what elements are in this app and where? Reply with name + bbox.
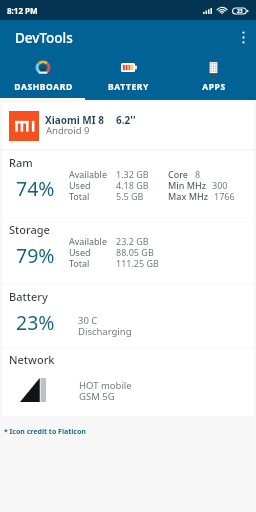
staticText: Max MHz <box>168 190 208 202</box>
staticText: 1766 <box>214 190 235 202</box>
staticText: Used <box>69 246 91 258</box>
button[interactable]: More options <box>230 24 256 50</box>
button[interactable]: DASHBOARD <box>0 54 86 100</box>
staticText: 88.05 GB <box>116 246 154 258</box>
staticText: HOT mobile <box>79 379 132 392</box>
staticText: 23% <box>16 309 55 336</box>
staticText: Used <box>69 179 91 191</box>
staticText: Android 9 <box>46 124 90 137</box>
button[interactable]: Battery <box>2 285 254 347</box>
staticText: 8 <box>195 168 201 180</box>
staticText: Discharging <box>78 325 132 338</box>
staticText: 74% <box>16 175 55 202</box>
staticText: Available <box>69 235 107 247</box>
staticText: Xiaomi MI 8 <box>45 113 104 127</box>
staticText: Min MHz <box>168 179 206 191</box>
staticText: Battery <box>9 289 48 304</box>
staticText: * Icon credit to Flaticon <box>4 427 86 437</box>
button[interactable]: Storage <box>2 218 254 284</box>
button[interactable]: Ram <box>2 151 254 217</box>
staticText: Storage <box>9 222 50 237</box>
button[interactable]: BATTERY <box>86 54 171 100</box>
staticText: Total <box>69 257 90 269</box>
staticText: 23.2 GB <box>116 235 149 247</box>
staticText: BATTERY <box>108 81 149 93</box>
staticText: DASHBOARD <box>14 81 73 93</box>
staticText: 1.32 GB <box>116 168 149 180</box>
other: Signal strength <box>20 378 46 402</box>
staticText: 4.18 GB <box>116 179 149 191</box>
staticText: 111.25 GB <box>116 257 159 269</box>
staticText: 79% <box>16 242 55 269</box>
staticText: Total <box>69 190 90 202</box>
button[interactable]: Xiaomi MI 8 <box>2 102 254 149</box>
staticText: 23 <box>237 8 243 15</box>
staticText: Network <box>9 352 55 367</box>
button[interactable]: Network <box>2 348 254 416</box>
staticText: Core <box>168 168 189 180</box>
staticText: 6.2'' <box>116 113 136 127</box>
staticText: DevTools <box>15 29 73 47</box>
staticText: GSM 5G <box>79 390 115 403</box>
button[interactable]: APPS <box>171 54 256 100</box>
staticText: APPS <box>202 81 226 93</box>
staticText: 5.5 GB <box>116 190 144 202</box>
staticText: Ram <box>9 155 33 170</box>
staticText: Available <box>69 168 107 180</box>
staticText: 8:12 PM <box>7 5 38 16</box>
staticText: 300 <box>212 179 228 191</box>
staticText: 30 C <box>78 314 98 327</box>
